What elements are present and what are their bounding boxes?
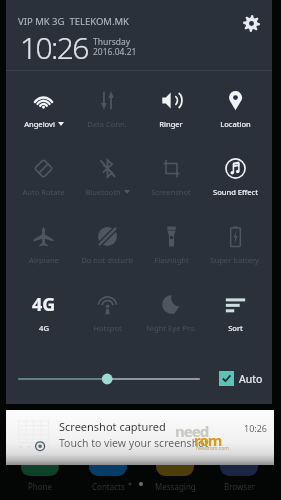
staticText: Location (220, 119, 251, 129)
button[interactable]: Sound Effect (203, 142, 267, 210)
staticText: Sort (228, 323, 243, 333)
staticText: Data Conn. (87, 119, 127, 129)
button[interactable]: Messaging (147, 458, 203, 500)
staticText: Browser (224, 481, 255, 492)
button[interactable]: Ringer (139, 74, 203, 142)
staticText: Thursday (93, 36, 131, 48)
staticText: Hotspot (93, 323, 122, 333)
staticText: Airplane (29, 255, 59, 265)
staticText: 2016.04.21 (93, 46, 137, 58)
staticText: rom (194, 430, 222, 450)
staticText: Night Eye Pro. (146, 323, 197, 333)
staticText: Screenshot captured (59, 419, 166, 434)
button[interactable]: Screenshot captured (6, 410, 274, 465)
button[interactable]: Screenshot (139, 142, 203, 210)
staticText: Contacts (92, 481, 125, 492)
staticText: Do not disturb (81, 255, 133, 265)
button[interactable]: Phone (12, 458, 68, 500)
staticText: Auto Rotate (22, 187, 65, 197)
button[interactable]: Sort (203, 278, 267, 346)
button[interactable]: Do not disturb (75, 210, 139, 278)
staticText: Screenshot (151, 187, 191, 197)
staticText: needrom.com (196, 445, 229, 452)
staticText: Super battery. (210, 255, 261, 265)
button[interactable]: Brightness (13, 373, 206, 385)
staticText: 4G (39, 323, 49, 333)
button[interactable]: 4G (12, 278, 75, 346)
staticText: Phone (28, 481, 53, 492)
staticText: 4G (32, 292, 56, 317)
button[interactable]: Super battery. (203, 210, 267, 278)
staticText: Ringer (159, 119, 183, 129)
button[interactable]: Location (203, 74, 267, 142)
button[interactable]: Settings (236, 8, 266, 38)
staticText: Auto (239, 372, 263, 386)
staticText: need (175, 421, 209, 441)
button[interactable]: Airplane (12, 210, 75, 278)
staticText: Touch to view your screenshot (59, 436, 209, 450)
staticText: Flashlight (154, 255, 189, 265)
button[interactable]: Bluetooth (75, 142, 139, 210)
button[interactable]: Auto Rotate (12, 142, 75, 210)
staticText: VIP MK 3G TELEKOM.MK (18, 15, 129, 28)
staticText: Angelovi (24, 119, 55, 129)
button[interactable]: Angelovi (12, 74, 75, 142)
button[interactable]: Data Conn. (75, 74, 139, 142)
staticText: Sound Effect (213, 187, 258, 197)
button[interactable]: Flashlight (139, 210, 203, 278)
staticText: Bluetooth (85, 187, 121, 197)
staticText: 10:26 (244, 422, 268, 434)
button[interactable]: Auto (219, 371, 263, 386)
button[interactable]: Contacts (80, 458, 136, 500)
staticText: Messaging (155, 481, 196, 492)
button[interactable]: Hotspot (75, 278, 139, 346)
staticText: 10:26 (20, 27, 88, 68)
button[interactable]: Night Eye Pro. (139, 278, 203, 346)
button[interactable]: Browser (211, 458, 267, 500)
